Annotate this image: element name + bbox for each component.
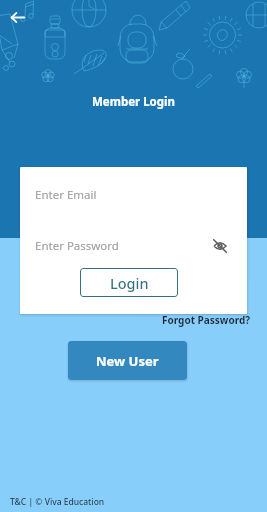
staticText: Forgot Password?: [162, 313, 251, 327]
button[interactable]: Forgot Password?: [158, 311, 255, 329]
button[interactable]: Back: [5, 5, 30, 30]
staticText: Login: [110, 273, 149, 293]
button[interactable]: Login: [80, 268, 178, 297]
button[interactable]: Toggle password visibility: [206, 232, 234, 260]
staticText: New User: [96, 352, 159, 370]
staticText: Enter Password: [35, 238, 119, 254]
staticText: Enter Email: [35, 187, 97, 203]
staticText: T&C | © Viva Education: [10, 496, 105, 508]
staticText: Member Login: [92, 94, 175, 110]
button[interactable]: New User: [68, 341, 187, 380]
